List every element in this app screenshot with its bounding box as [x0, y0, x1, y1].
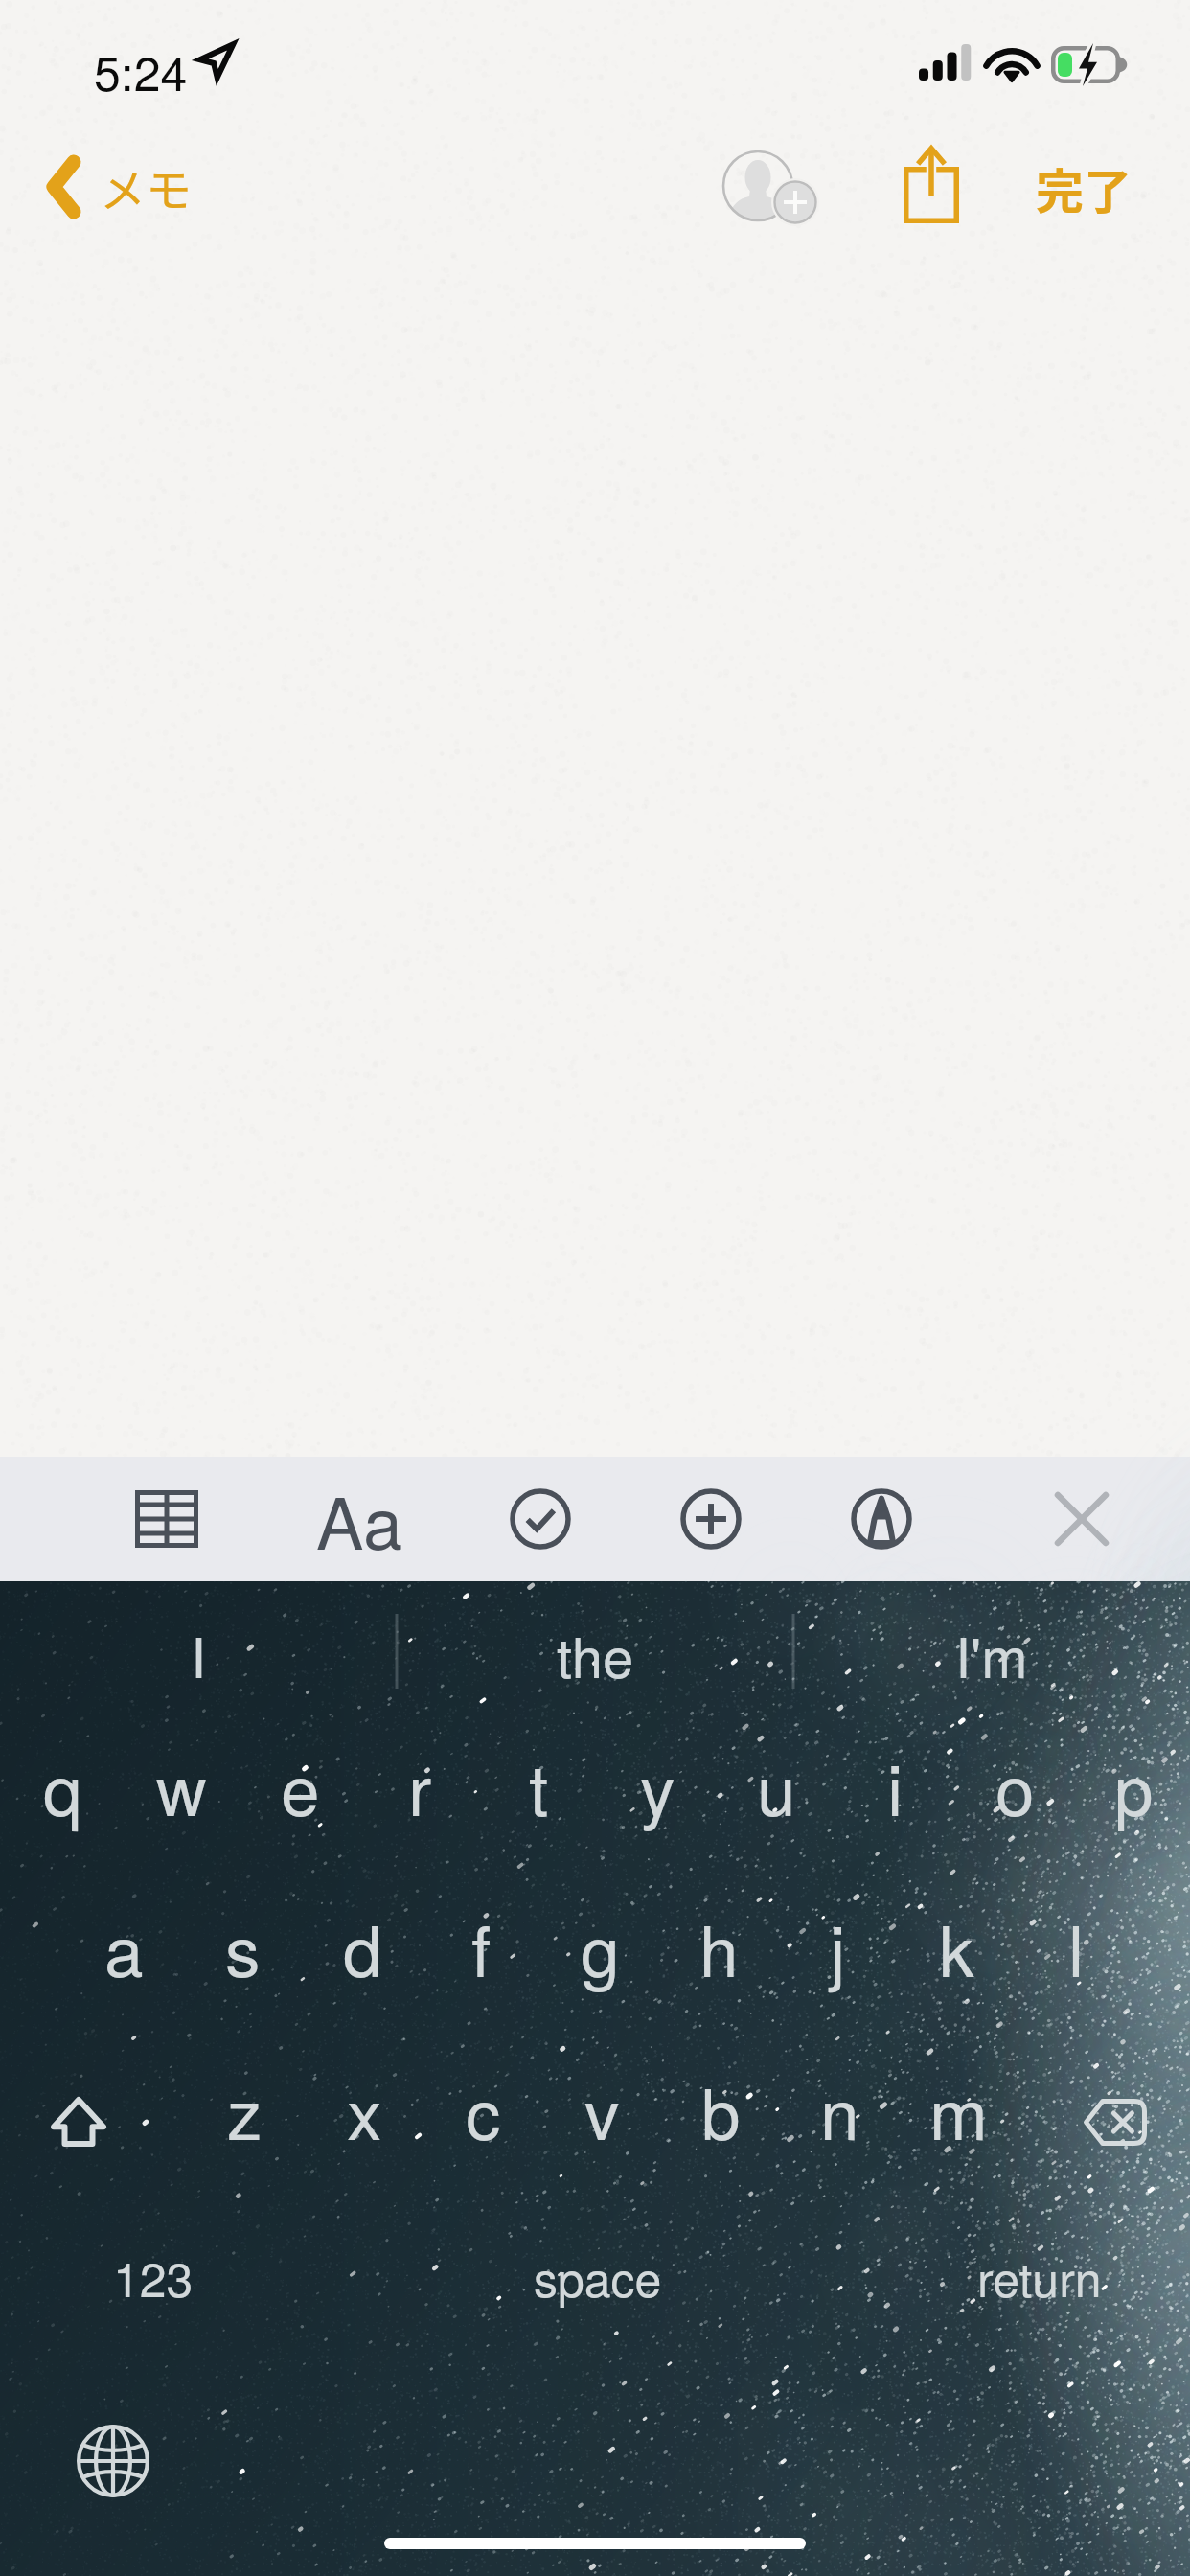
- button[interactable]: space: [416, 2221, 780, 2333]
- button[interactable]: Table: [124, 1479, 210, 1559]
- button[interactable]: Aa: [303, 1459, 417, 1579]
- staticText: o: [995, 1736, 1035, 1836]
- staticText: space: [534, 2242, 662, 2311]
- staticText: v: [584, 2059, 620, 2160]
- button[interactable]: return: [929, 2221, 1150, 2333]
- button[interactable]: r: [360, 1726, 479, 1845]
- staticText: p: [1114, 1736, 1154, 1836]
- staticText: the: [557, 1614, 634, 1693]
- button[interactable]: h: [659, 1887, 778, 2006]
- button[interactable]: w: [122, 1726, 240, 1845]
- button[interactable]: y: [598, 1726, 717, 1845]
- staticText: Aa: [316, 1468, 403, 1570]
- staticText: i: [887, 1736, 904, 1836]
- button[interactable]: Checklist: [502, 1481, 579, 1557]
- button[interactable]: p: [1074, 1726, 1190, 1845]
- button[interactable]: Markup: [843, 1481, 920, 1557]
- button[interactable]: o: [955, 1726, 1074, 1845]
- staticText: k: [939, 1897, 974, 1997]
- staticText: w: [156, 1736, 207, 1836]
- staticText: n: [820, 2059, 859, 2160]
- staticText: g: [581, 1897, 620, 1997]
- staticText: I: [191, 1614, 207, 1693]
- staticText: u: [757, 1736, 796, 1836]
- button[interactable]: I: [0, 1581, 397, 1725]
- button[interactable]: c: [423, 2050, 542, 2169]
- staticText: e: [281, 1736, 320, 1836]
- button[interactable]: I'm: [793, 1581, 1190, 1725]
- button[interactable]: 123: [67, 2221, 240, 2333]
- staticText: I'm: [955, 1614, 1028, 1693]
- button[interactable]: l: [1017, 1887, 1135, 2006]
- button[interactable]: d: [303, 1887, 422, 2006]
- staticText: return: [977, 2242, 1102, 2311]
- staticText: q: [43, 1736, 82, 1836]
- button[interactable]: Next keyboard: [56, 2403, 171, 2518]
- staticText: b: [701, 2059, 741, 2160]
- button[interactable]: z: [185, 2050, 304, 2169]
- button[interactable]: u: [717, 1726, 835, 1845]
- button[interactable]: n: [780, 2050, 899, 2169]
- button[interactable]: e: [240, 1726, 359, 1845]
- button[interactable]: Add attachment: [673, 1481, 749, 1557]
- staticText: x: [347, 2059, 382, 2160]
- button[interactable]: x: [305, 2050, 423, 2169]
- staticText: m: [929, 2059, 988, 2160]
- staticText: h: [699, 1897, 739, 1997]
- staticText: y: [640, 1736, 675, 1836]
- staticText: j: [830, 1897, 846, 1997]
- button[interactable]: i: [835, 1726, 954, 1845]
- staticText: メモ: [100, 153, 193, 220]
- button[interactable]: the: [397, 1581, 793, 1725]
- button[interactable]: v: [542, 2050, 661, 2169]
- staticText: a: [104, 1897, 144, 1997]
- staticText: z: [227, 2059, 263, 2160]
- button[interactable]: j: [778, 1887, 897, 2006]
- button[interactable]: Shift: [18, 2062, 139, 2181]
- button[interactable]: Close keyboard: [1046, 1483, 1117, 1554]
- button[interactable]: 完了: [1017, 142, 1151, 234]
- button[interactable]: Share: [886, 134, 976, 235]
- button[interactable]: g: [540, 1887, 659, 2006]
- button[interactable]: b: [661, 2050, 780, 2169]
- staticText: l: [1068, 1897, 1085, 1997]
- button[interactable]: k: [897, 1887, 1016, 2006]
- staticText: t: [529, 1736, 549, 1836]
- staticText: 5:24: [94, 36, 188, 105]
- staticText: s: [225, 1897, 261, 1997]
- button[interactable]: f: [422, 1887, 540, 2006]
- staticText: r: [408, 1736, 432, 1836]
- button[interactable]: Add people: [707, 138, 830, 243]
- button[interactable]: メモ: [29, 145, 214, 229]
- button[interactable]: a: [64, 1887, 183, 2006]
- staticText: d: [343, 1897, 382, 1997]
- button[interactable]: q: [3, 1726, 122, 1845]
- staticText: 123: [113, 2242, 194, 2311]
- staticText: c: [466, 2059, 501, 2160]
- staticText: 完了: [1036, 153, 1132, 222]
- staticText: f: [471, 1897, 492, 1997]
- button[interactable]: Delete: [1055, 2062, 1176, 2181]
- button[interactable]: t: [479, 1726, 598, 1845]
- button[interactable]: m: [899, 2050, 1018, 2169]
- button[interactable]: s: [183, 1887, 302, 2006]
